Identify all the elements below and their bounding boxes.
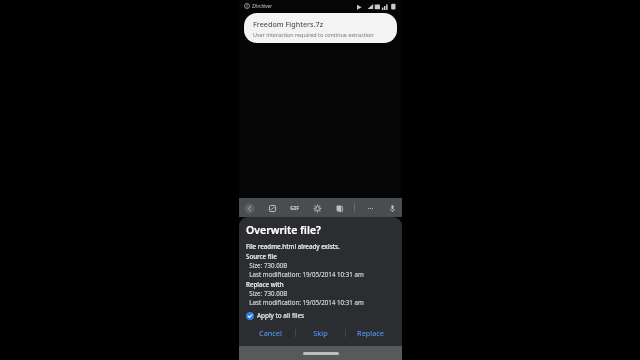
staticText: File readme.html already exists. [246,242,340,250]
staticText: Last modification: 19/05/2014 10:31 am [246,270,364,278]
button[interactable]: Replace [346,325,395,341]
staticText: GIF [290,204,300,212]
staticText: Size: 730.00B [246,289,288,297]
staticText: Freedom Fighters.7z [253,19,324,29]
staticText: Apply to all files [257,311,305,320]
staticText: Cancel [259,328,282,338]
staticText: Size: 730.00B [246,261,288,269]
staticText: Overwrite file? [246,223,321,237]
staticText: Source file [246,252,277,260]
staticText: Replace with [246,280,284,288]
button[interactable]: Settings [310,201,324,215]
staticText: Replace [357,328,384,338]
button[interactable]: Clipboard [332,201,346,215]
staticText: Last modification: 19/05/2014 10:31 am [246,298,364,306]
button[interactable]: Skip [296,325,345,341]
button[interactable]: Stickers [265,201,279,215]
staticText: ZArchiver [252,3,273,9]
button[interactable]: Voice input [385,201,399,215]
staticText: Skip [313,328,328,338]
button[interactable]: GIF [288,201,302,215]
staticText: User interaction required to continue ex… [253,31,374,38]
button[interactable]: Back [242,201,256,215]
button[interactable]: Cancel [246,325,295,341]
button[interactable]: Apply to all files [246,310,305,321]
button[interactable]: Freedom Fighters.7z [244,13,397,43]
button[interactable]: More options [363,201,377,215]
